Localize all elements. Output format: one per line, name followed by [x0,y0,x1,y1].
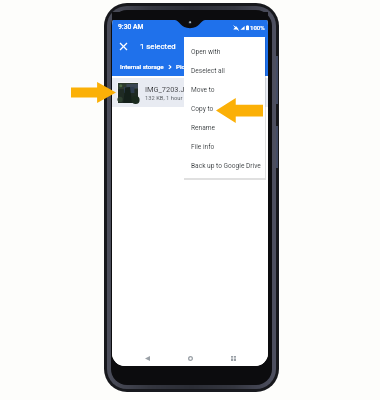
button[interactable]: Rename [184,118,265,137]
button[interactable]: Home [183,351,197,365]
staticText: Back up to Google Drive [191,162,261,170]
button[interactable]: Back up to Google Drive [184,156,265,175]
staticText: Move to [191,86,215,94]
button[interactable]: Deselect all [184,61,265,80]
staticText: 132 KB, 1 hour ago [145,95,194,102]
button[interactable]: File info [184,137,265,156]
staticText: Open with [191,48,221,56]
button[interactable]: Pictures [176,63,199,70]
staticText: Deselect all [191,67,225,75]
staticText: 1 selected [140,42,176,51]
button[interactable]: Move to [184,80,265,99]
button[interactable]: Close selection [112,35,134,57]
staticText: IMG_7203.JPG [145,85,195,94]
staticText: File info [191,143,215,151]
button[interactable]: IMG_7203.JPG [112,78,268,107]
button[interactable]: Recent apps [226,351,240,365]
button[interactable]: Internal storage [120,63,164,70]
staticText: Rename [191,124,216,132]
staticText: 100% [250,24,265,31]
button[interactable]: Open with [184,42,265,61]
staticText: Copy to [191,105,214,113]
button[interactable]: Back [140,351,154,365]
staticText: 9:30 AM [118,23,144,31]
button[interactable]: Copy to [184,99,265,118]
